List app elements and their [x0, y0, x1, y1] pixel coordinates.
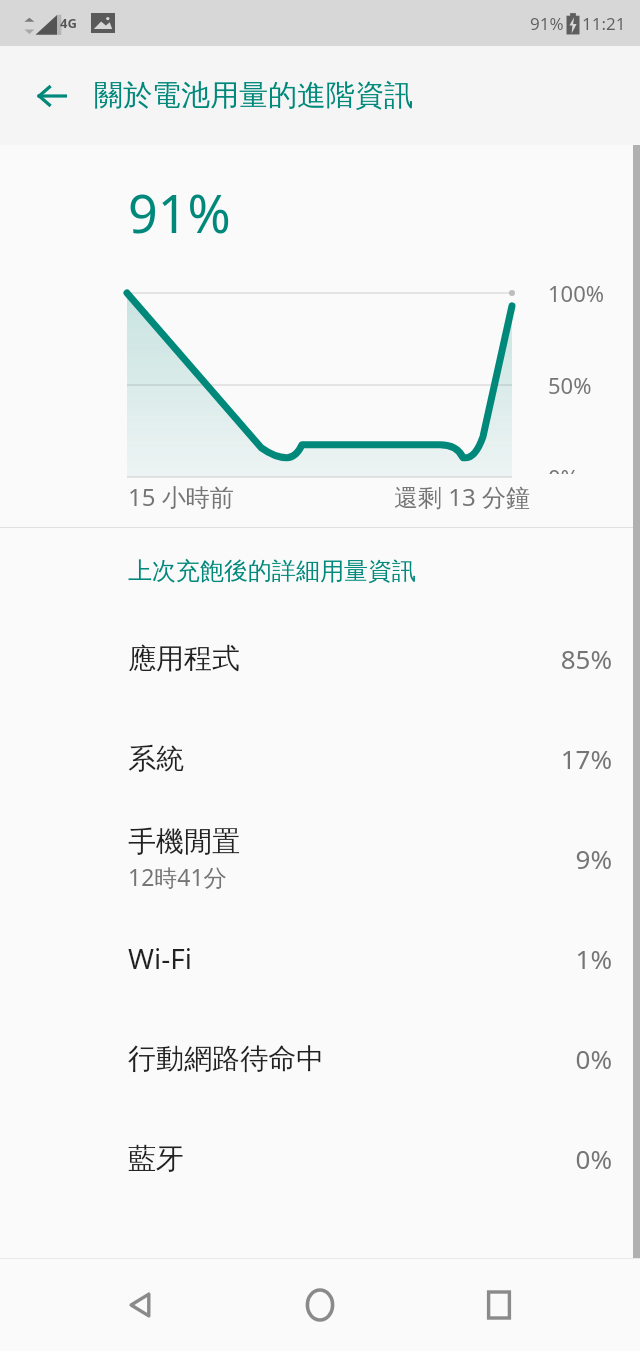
staticText: 4G [60, 14, 77, 32]
staticText: 系統 [128, 741, 184, 776]
staticText: 0% [575, 1141, 612, 1176]
staticText: 1% [575, 941, 612, 976]
staticText: 11:21 [582, 12, 626, 35]
staticText: 應用程式 [128, 641, 240, 676]
staticText: 行動網路待命中 [128, 1041, 324, 1076]
staticText: 藍牙 [128, 1141, 184, 1176]
staticText: 還剩 13 分鐘 [394, 480, 530, 513]
staticText: 0% [575, 1041, 612, 1076]
button[interactable]: 藍牙 [0, 1108, 640, 1208]
staticText: 手機閒置 [128, 824, 240, 859]
staticText: Wi-Fi [128, 939, 193, 977]
button[interactable]: Back [20, 64, 84, 128]
button[interactable]: Back [103, 1267, 179, 1343]
button[interactable]: Wi-Fi [0, 908, 640, 1008]
staticText: 0% [548, 462, 579, 474]
staticText: 9% [575, 841, 612, 876]
button[interactable]: Home [282, 1267, 358, 1343]
staticText: 12時41分 [128, 861, 227, 892]
staticText: 15 小時前 [128, 480, 234, 513]
staticText: 上次充飽後的詳細用量資訊 [128, 556, 416, 586]
staticText: 17% [560, 741, 612, 776]
staticText: 91% [128, 177, 231, 248]
button[interactable]: 應用程式 [0, 608, 640, 708]
button[interactable]: Recents [461, 1267, 537, 1343]
staticText: 85% [560, 641, 612, 676]
button[interactable]: 行動網路待命中 [0, 1008, 640, 1108]
button[interactable]: 手機閒置 [0, 808, 640, 908]
staticText: 100% [548, 278, 605, 308]
button[interactable]: 系統 [0, 708, 640, 808]
staticText: 50% [548, 370, 592, 400]
staticText: 91% [530, 12, 564, 35]
staticText: 關於電池用量的進階資訊 [94, 77, 413, 114]
